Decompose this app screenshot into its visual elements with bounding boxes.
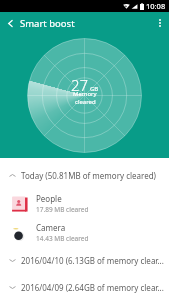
staticText: GB [90, 85, 99, 93]
staticText: People [36, 193, 62, 204]
staticText: 17.89 MB cleared [36, 205, 89, 214]
staticText: 27 [71, 75, 89, 95]
staticText: 10:08 [146, 1, 166, 11]
staticText: 2016/04/10 (6.13GB of memory clear... [21, 255, 164, 266]
staticText: 14.43 MB cleared [36, 234, 89, 243]
staticText: Camera [36, 222, 66, 233]
button[interactable]: Today (50.81MB of memory cleared) [0, 161, 169, 189]
staticText: Memory [73, 90, 97, 98]
button[interactable]: 2016/04/10 (6.13GB of memory clear... [0, 247, 169, 274]
button[interactable]: 2016/04/09 (2.64GB of memory clear... [0, 274, 169, 300]
staticText: 2016/04/09 (2.64GB of memory clear... [21, 282, 164, 293]
staticText: Smart boost [20, 17, 75, 30]
button[interactable]: More options [151, 12, 169, 34]
staticText: Today (50.81MB of memory cleared) [21, 170, 157, 181]
staticText: cleared [75, 98, 96, 106]
button[interactable]: Back [0, 12, 20, 34]
button[interactable]: Camera [0, 218, 169, 247]
button[interactable]: People [0, 189, 169, 218]
